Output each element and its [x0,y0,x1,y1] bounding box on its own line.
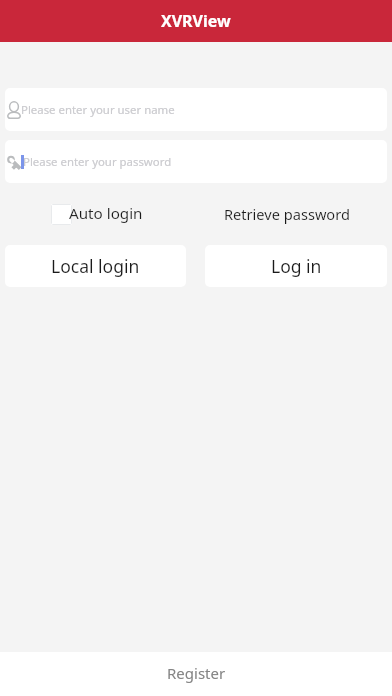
other: Password [7,155,21,169]
staticText: Please enter your password [23,154,172,170]
button[interactable]: Log in [205,245,387,287]
staticText: Register [167,663,226,683]
button[interactable]: Auto login [0,203,194,224]
button[interactable]: Local login [5,245,186,287]
button[interactable]: Password [5,140,387,183]
staticText: XVRView [161,10,231,32]
staticText: Retrieve password [224,204,350,224]
staticText: Auto login [69,203,143,224]
button[interactable]: User name [5,88,387,131]
staticText: Please enter your user name [21,102,175,118]
other: User name [7,101,21,119]
button[interactable]: Retrieve password [196,204,392,224]
staticText: Local login [51,254,140,278]
staticText: Log in [271,254,322,278]
button[interactable]: Register [120,663,272,683]
